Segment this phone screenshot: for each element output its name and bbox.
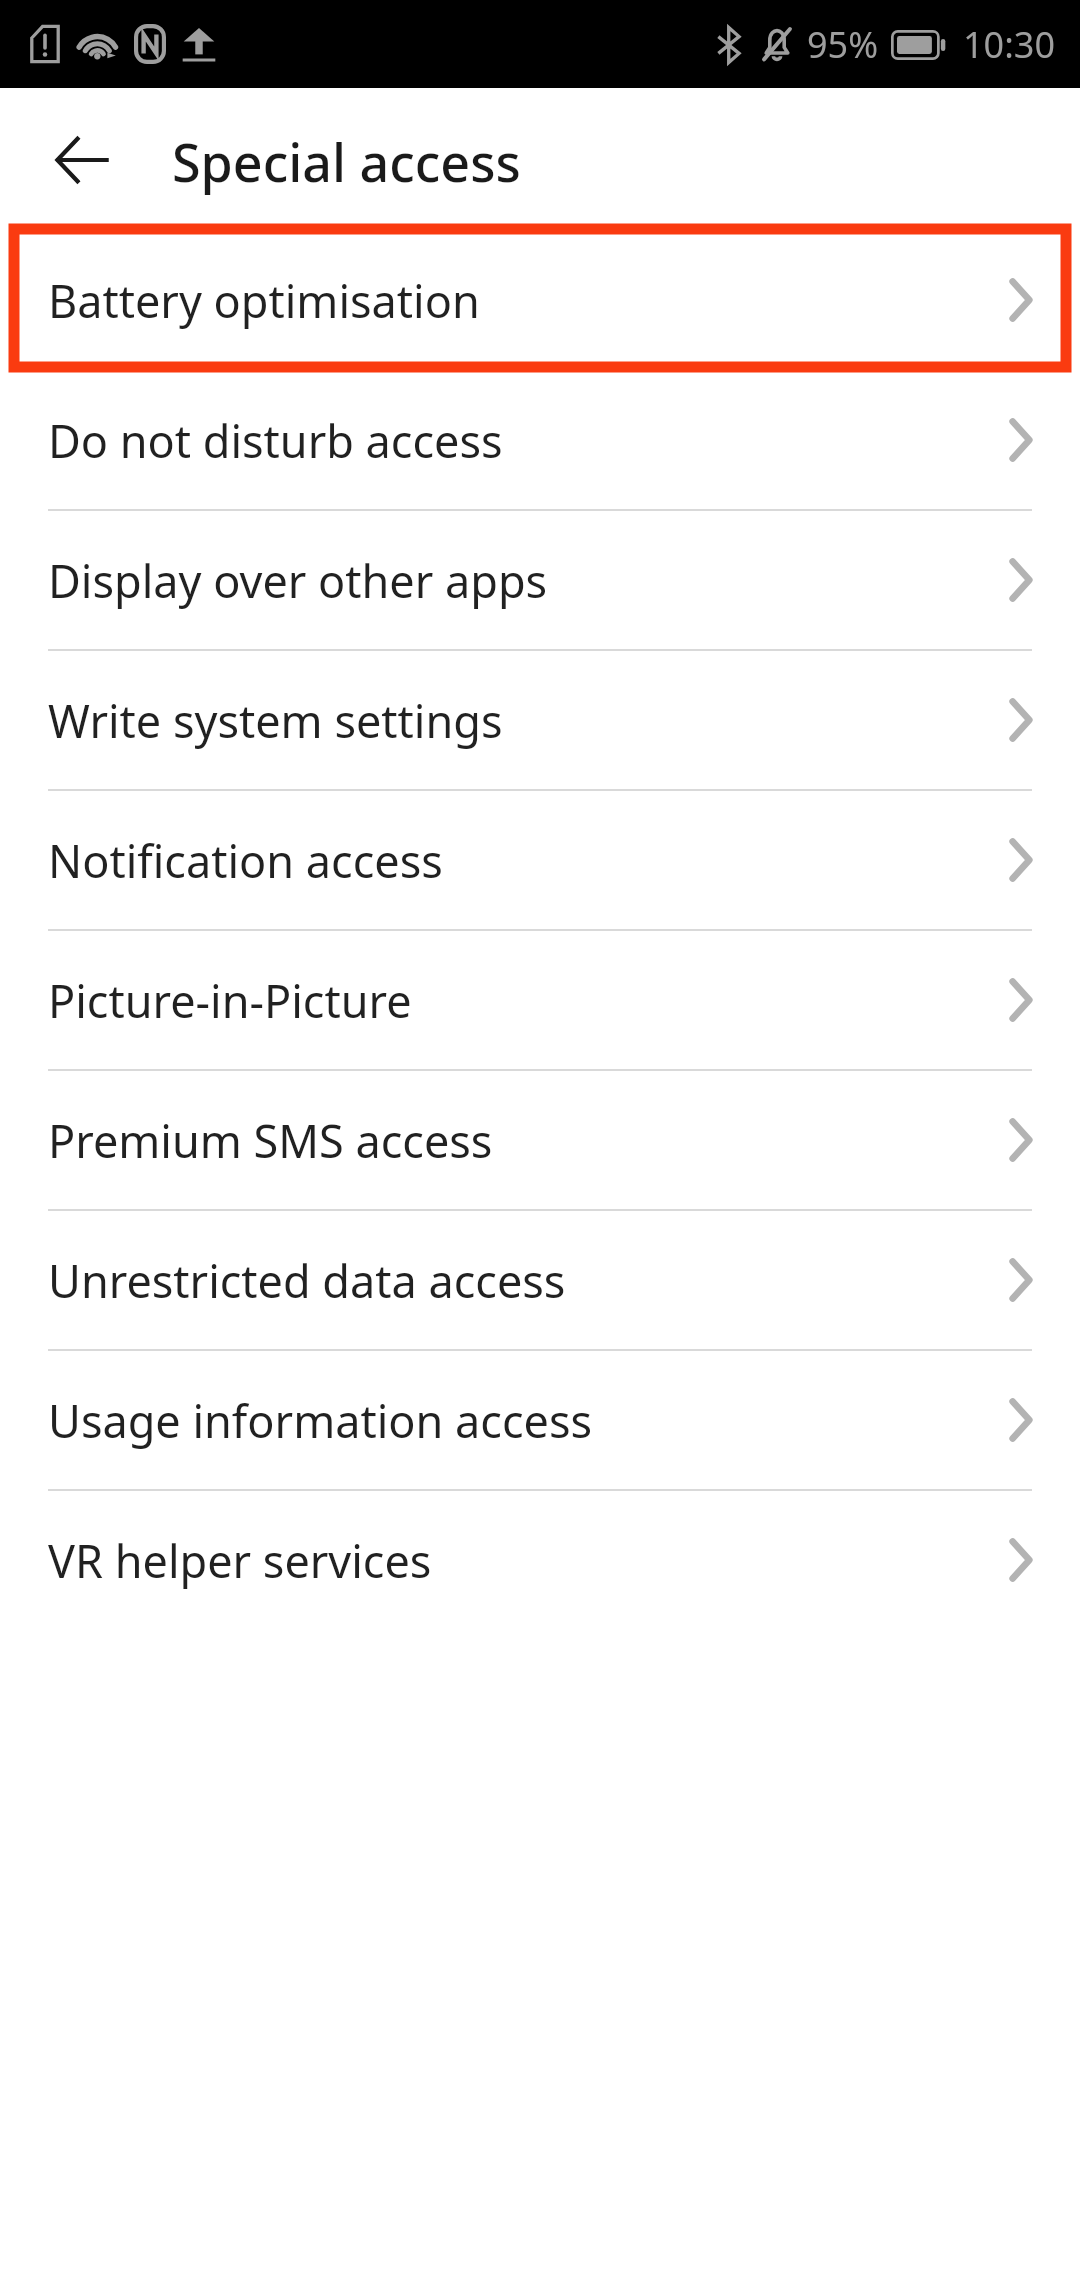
staticText: Picture-in-Picture [48,970,412,1031]
button[interactable]: Write system settings [0,651,1080,789]
button[interactable]: Battery optimisation [0,231,1080,369]
staticText: Battery optimisation [48,270,480,331]
staticText: Write system settings [48,690,503,751]
staticText: Special access [172,126,521,197]
button[interactable]: Display over other apps [0,511,1080,649]
staticText: 10:30 [963,20,1056,69]
button[interactable]: Notification access [0,791,1080,929]
button[interactable]: Unrestricted data access [0,1211,1080,1349]
staticText: Do not disturb access [48,410,503,471]
staticText: Unrestricted data access [48,1250,566,1311]
staticText: 95% [807,20,879,69]
button[interactable]: Picture-in-Picture [0,931,1080,1069]
staticText: Notification access [48,830,443,891]
button[interactable]: Back [28,106,136,214]
staticText: VR helper services [48,1530,432,1591]
button[interactable]: VR helper services [0,1491,1080,1629]
button[interactable]: Do not disturb access [0,371,1080,509]
staticText: Usage information access [48,1390,593,1451]
button[interactable]: Premium SMS access [0,1071,1080,1209]
staticText: Premium SMS access [48,1110,493,1171]
staticText: Display over other apps [48,550,548,611]
button[interactable]: Usage information access [0,1351,1080,1489]
